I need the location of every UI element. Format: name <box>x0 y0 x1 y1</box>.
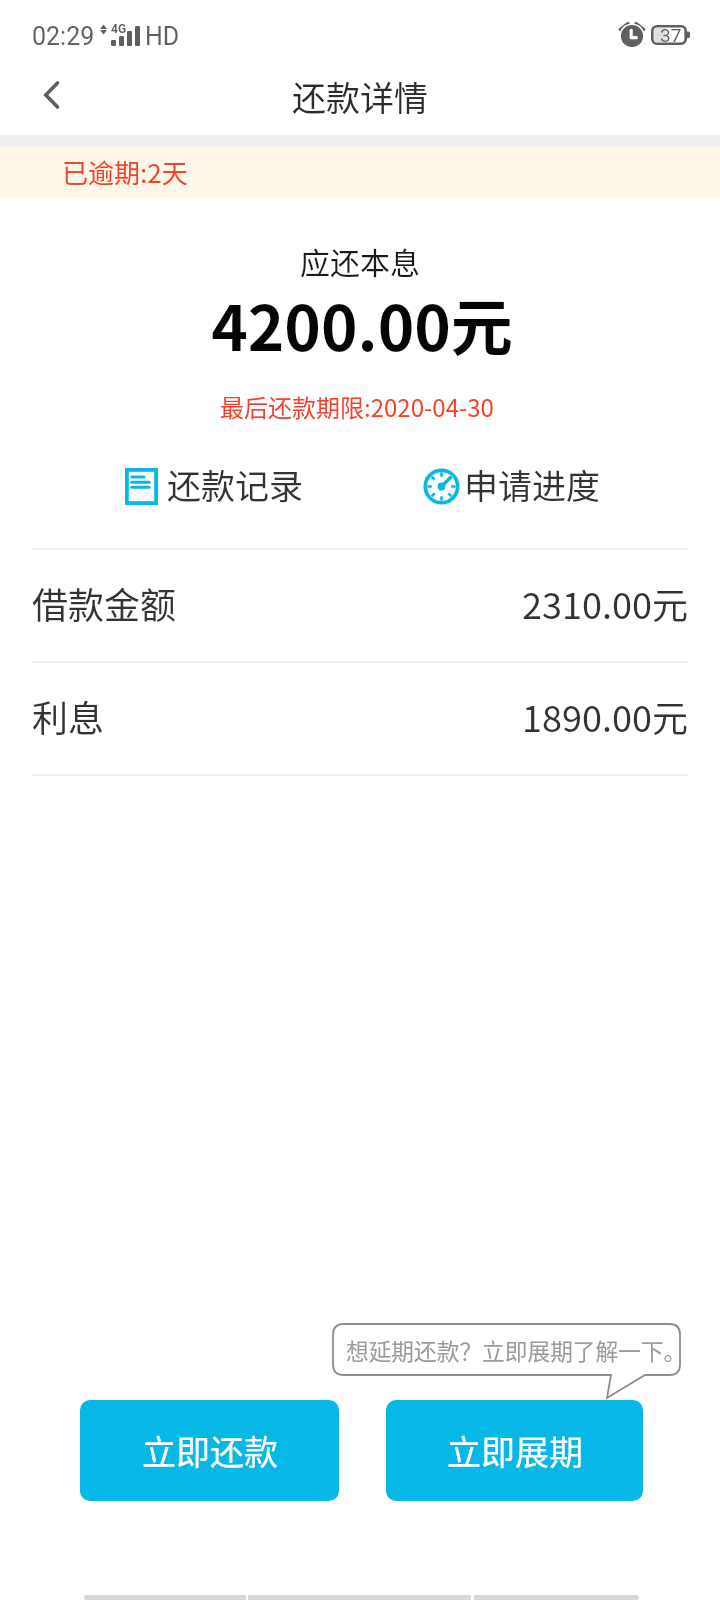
button[interactable]: Back <box>0 66 96 135</box>
button[interactable]: 立即还款 <box>80 1400 339 1501</box>
other: Alarm <box>619 22 645 48</box>
staticText: 已逾期:2天 <box>62 153 188 191</box>
other: 申请进度 <box>423 468 460 505</box>
staticText: 立即展期 <box>447 1426 583 1475</box>
button[interactable]: 还款记录 <box>119 458 309 515</box>
button[interactable]: 立即展期 <box>386 1400 643 1501</box>
staticText: 37 <box>660 24 682 44</box>
staticText: 4G <box>111 22 127 36</box>
button[interactable]: 申请进度 <box>417 458 608 515</box>
staticText: 立即还款 <box>142 1426 278 1475</box>
staticText: HD <box>145 22 180 51</box>
staticText: 最后还款期限:2020-04-30 <box>0 389 717 424</box>
staticText: 2310.00元 <box>522 577 688 629</box>
staticText: 还款记录 <box>167 460 303 509</box>
staticText: 想延期还款？立即展期了解一下。 <box>346 1334 687 1367</box>
staticText: 利息 <box>32 690 105 742</box>
other: 还款记录 <box>125 468 158 505</box>
staticText: 借款金额 <box>32 577 177 629</box>
staticText: 02:29 <box>32 22 95 51</box>
staticText: 申请进度 <box>464 460 600 509</box>
button[interactable]: 借款金额 <box>0 550 720 661</box>
button[interactable]: 利息 <box>0 663 720 774</box>
staticText: 还款详情 <box>292 72 428 121</box>
staticText: 1890.00元 <box>522 690 688 742</box>
staticText: 4200.00元 <box>2 279 720 369</box>
staticText: 应还本息 <box>0 239 720 282</box>
